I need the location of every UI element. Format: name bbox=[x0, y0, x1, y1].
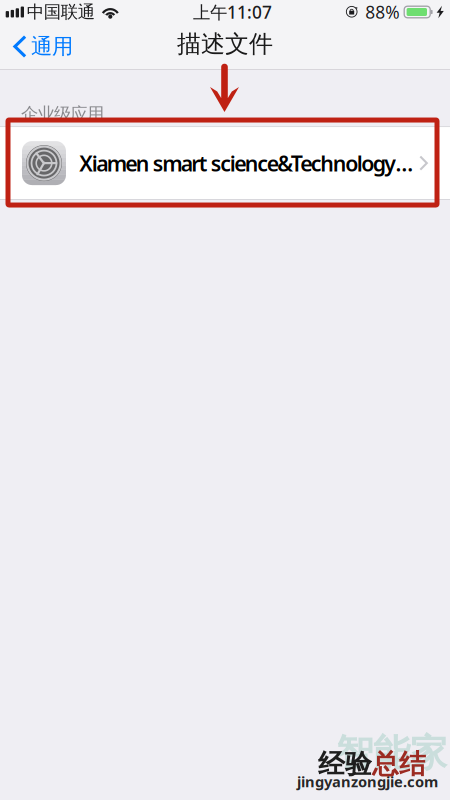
button[interactable]: 通用 bbox=[0, 24, 83, 68]
staticText: Xiamen smart science&Technology D... bbox=[79, 149, 414, 177]
staticText: 中国联通 bbox=[27, 1, 95, 23]
staticText: 智能家 bbox=[336, 730, 447, 776]
staticText: 上午11:07 bbox=[193, 0, 272, 23]
staticText: 通用 bbox=[31, 33, 73, 60]
staticText: 88% bbox=[365, 0, 399, 23]
staticText: jingyanzongjie.com bbox=[297, 772, 438, 791]
button[interactable]: Xiamen smart science&Technology D... bbox=[0, 127, 450, 199]
staticText: 总结 bbox=[372, 748, 426, 780]
staticText: 经验 bbox=[318, 748, 372, 780]
staticText: 企业级应用 bbox=[21, 103, 104, 125]
staticText: 描述文件 bbox=[177, 29, 273, 59]
